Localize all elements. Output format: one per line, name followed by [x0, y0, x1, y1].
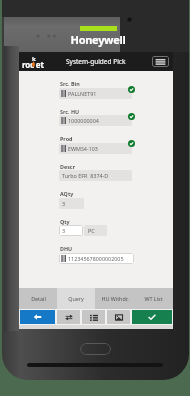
staticText: PALLNET91	[68, 90, 97, 97]
staticText: Src. Bin	[60, 80, 80, 87]
button[interactable]: 3	[59, 198, 84, 209]
staticText: roc et	[22, 59, 44, 70]
staticText: 112345678000002005	[68, 255, 124, 262]
staticText: k	[32, 55, 36, 63]
staticText: Descr	[60, 163, 76, 170]
button[interactable]: PC	[84, 225, 107, 236]
button[interactable]: Menu	[152, 56, 169, 67]
button[interactable]: EWMS4-103	[59, 143, 132, 154]
button[interactable]: List	[82, 310, 105, 324]
staticText: 1000000004	[68, 117, 99, 124]
button[interactable]: PALLNET91	[59, 88, 132, 99]
button[interactable]: Confirm	[132, 310, 172, 324]
button[interactable]: WT List	[134, 288, 173, 309]
button[interactable]: 3	[59, 225, 83, 236]
button[interactable]: Back	[20, 310, 55, 324]
button[interactable]: Home	[80, 343, 111, 355]
staticText: 3	[62, 200, 66, 207]
staticText: PC	[88, 227, 95, 234]
button[interactable]: 112345678000002005	[59, 253, 134, 264]
staticText: Qty	[60, 218, 70, 225]
staticText: Src. HU	[60, 108, 80, 115]
button[interactable]: Query	[57, 288, 95, 309]
staticText: HU Withdr.	[101, 295, 129, 302]
staticText: WT List	[144, 295, 163, 302]
staticText: EWMS4-103	[68, 145, 98, 152]
staticText: Query	[68, 295, 84, 302]
button[interactable]: 1000000004	[59, 115, 132, 126]
staticText: System-guided Pick	[66, 57, 126, 66]
staticText: Honeywell	[48, 32, 148, 47]
button[interactable]: Detail	[19, 288, 57, 309]
button[interactable]: Rocket	[22, 55, 44, 69]
staticText: Prod	[60, 135, 73, 142]
staticText: DHU	[60, 245, 73, 252]
button[interactable]: Gallery	[107, 310, 130, 324]
staticText: 3	[62, 227, 66, 234]
staticText: Turbo EFR 8374-D	[62, 172, 109, 179]
button[interactable]: HU Withdr.	[95, 288, 134, 309]
staticText: Detail	[31, 295, 46, 302]
staticText: AQty	[60, 190, 74, 197]
button[interactable]: Transfer	[57, 310, 80, 324]
button[interactable]: Turbo EFR 8374-D	[59, 170, 132, 181]
